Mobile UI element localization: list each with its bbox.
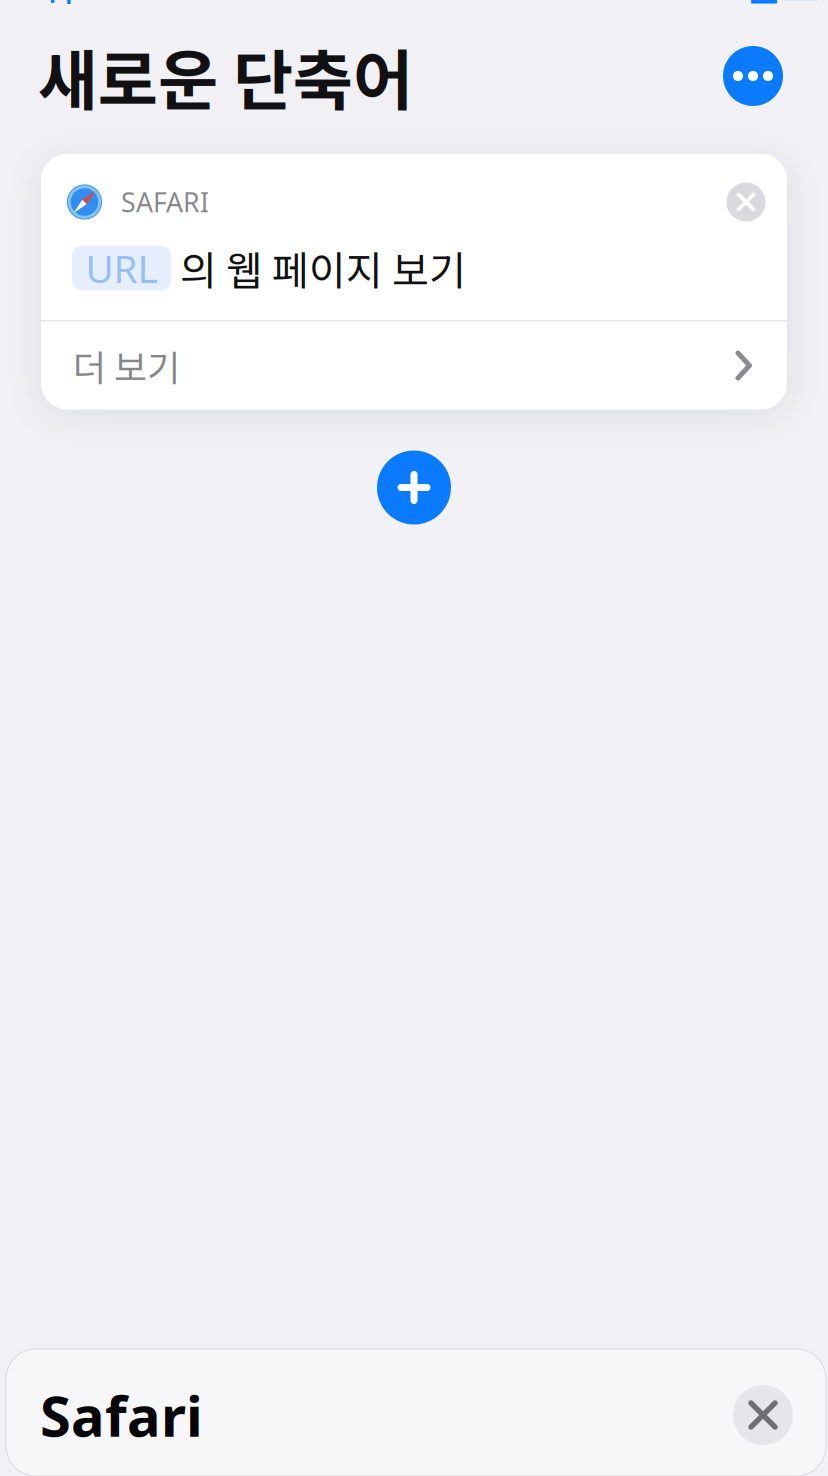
- staticText: 취소: [38, 0, 114, 13]
- staticText: 새로운 단축어: [38, 29, 413, 123]
- button[interactable]: 완료: [744, 0, 820, 13]
- button[interactable]: Close: [731, 1383, 795, 1447]
- staticText: Safari: [40, 1378, 203, 1452]
- staticText: 의 웹 페이지 보기: [180, 239, 466, 297]
- staticText: URL: [85, 242, 157, 294]
- staticText: 더 보기: [73, 339, 180, 391]
- button[interactable]: 취소: [38, 0, 114, 13]
- staticText: SAFARI: [121, 184, 209, 220]
- staticText: 완료: [744, 0, 820, 13]
- button[interactable]: 더 보기: [41, 321, 787, 409]
- button[interactable]: More options: [721, 44, 785, 108]
- button[interactable]: Remove action: [723, 179, 769, 225]
- button[interactable]: Add action: [374, 447, 454, 527]
